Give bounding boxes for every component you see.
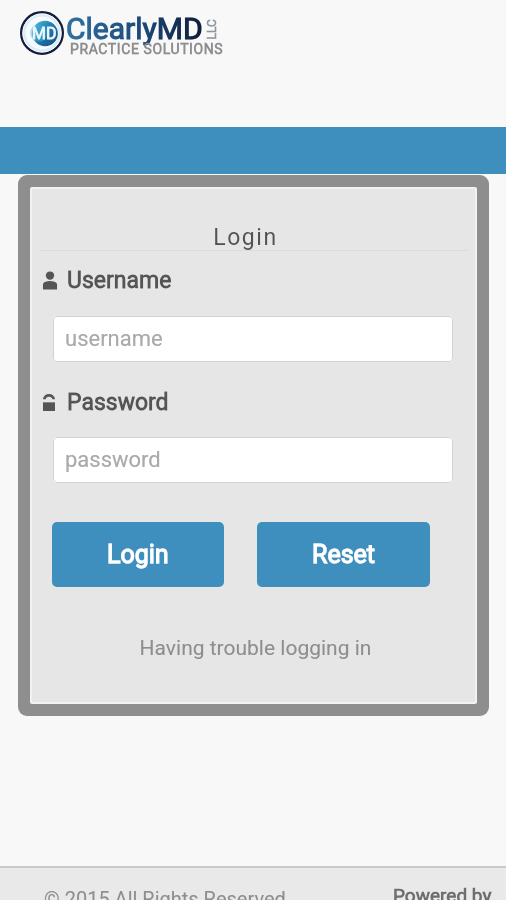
staticText: © 2015 All Rights Reserved <box>44 887 286 900</box>
staticText: MD <box>32 24 57 43</box>
staticText: Reset <box>312 540 376 569</box>
staticText: Password <box>67 389 169 416</box>
staticText: username <box>65 326 163 352</box>
staticText: LLC <box>204 18 218 39</box>
staticText: ClearlyMD <box>66 11 203 46</box>
staticText: Powered by <box>393 884 492 900</box>
staticText: Login <box>107 540 169 569</box>
staticText: PRACTICE SOLUTIONS <box>70 41 224 57</box>
button[interactable]: Reset <box>257 522 430 587</box>
other: ClearlyMD logo <box>20 11 64 55</box>
staticText: Username <box>67 267 172 294</box>
button[interactable]: Having trouble logging in <box>34 636 477 661</box>
button[interactable]: username <box>53 316 453 362</box>
staticText: password <box>65 447 161 473</box>
button[interactable]: password <box>53 437 453 483</box>
staticText: Login <box>30 224 467 251</box>
button[interactable]: Login <box>52 522 224 587</box>
